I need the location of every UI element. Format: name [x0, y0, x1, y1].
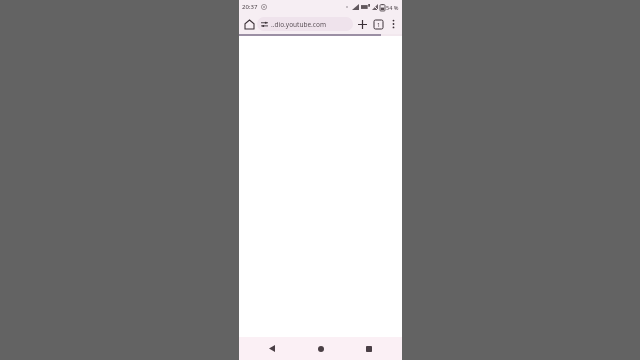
button[interactable]: Back	[256, 337, 288, 360]
staticText: 1	[377, 21, 381, 28]
button[interactable]: Recent apps	[353, 337, 385, 360]
button[interactable]: ..dio.youtube.com	[257, 17, 353, 31]
button[interactable]: Home	[241, 16, 257, 32]
staticText: ..dio.youtube.com	[271, 20, 326, 29]
button[interactable]: Switch tabs, 1 open	[370, 16, 386, 32]
staticText: 20:37	[242, 3, 258, 11]
button[interactable]: Home	[305, 337, 337, 360]
button[interactable]: New tab	[354, 16, 370, 32]
staticText: 54 %	[386, 4, 399, 11]
button[interactable]: More options	[386, 17, 400, 31]
